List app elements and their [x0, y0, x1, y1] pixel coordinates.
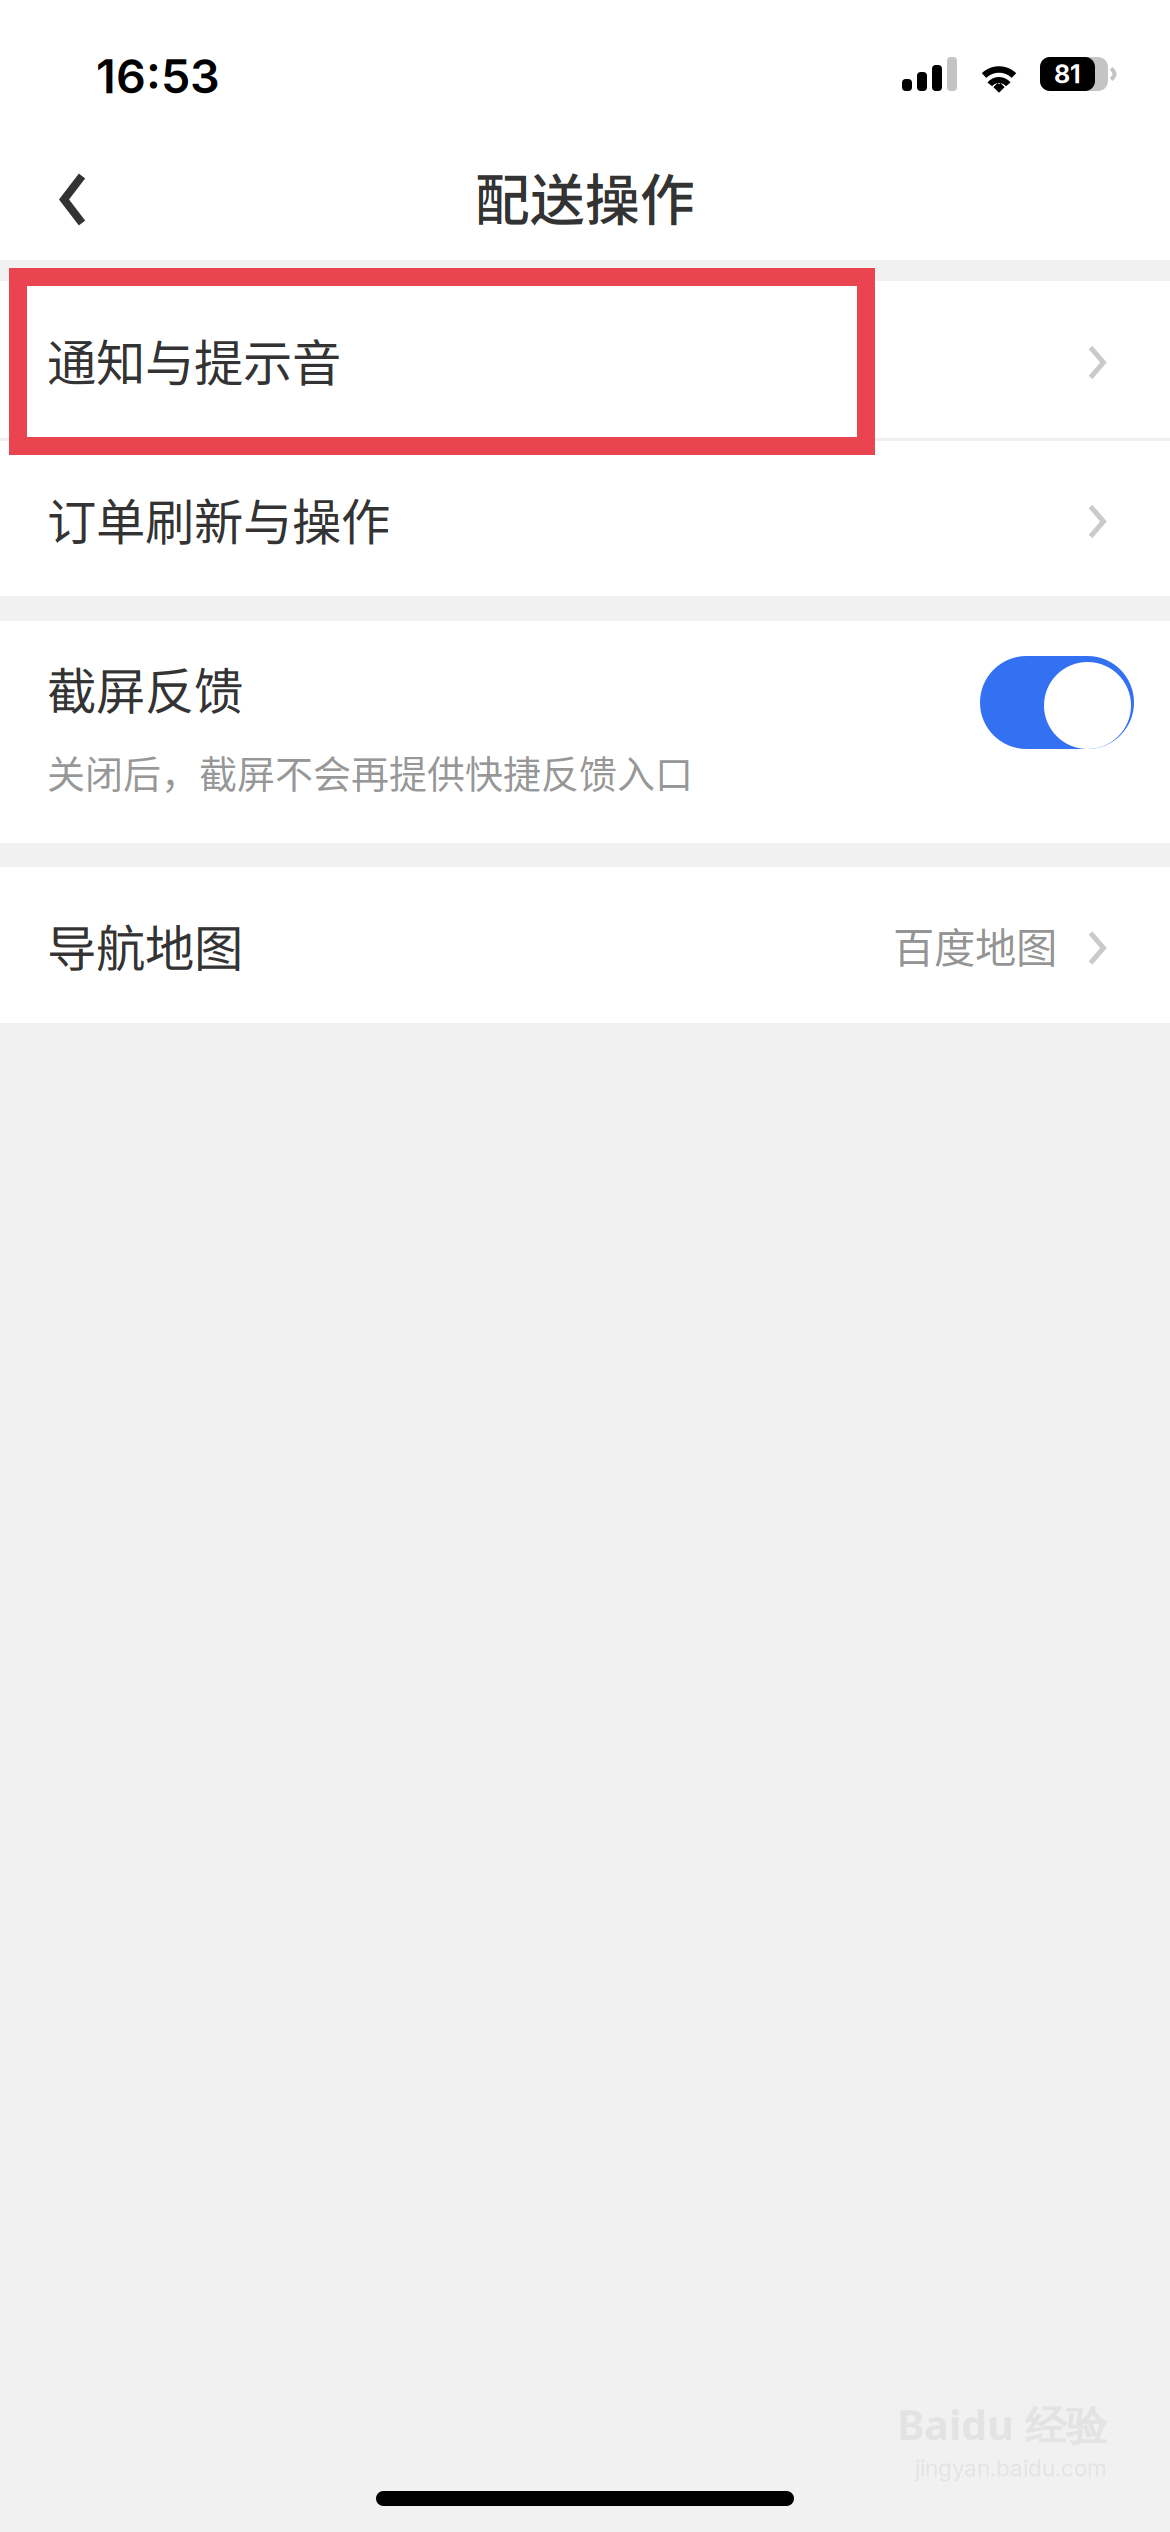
staticText: 关闭后，截屏不会再提供快捷反馈入口 [47, 744, 693, 799]
staticText: 订单刷新与操作 [47, 483, 390, 554]
button[interactable]: 返回 [0, 132, 140, 260]
button[interactable]: 通知与提示音 [0, 281, 1170, 438]
staticText: 导航地图 [47, 909, 243, 981]
staticText: 81 [1054, 59, 1081, 89]
staticText: 16:53 [96, 48, 220, 104]
button[interactable]: 导航地图 [0, 867, 1170, 1023]
staticText: Baidu 经验 [897, 2396, 1107, 2452]
button[interactable]: 1 [980, 656, 1134, 749]
staticText: 配送操作 [475, 156, 695, 236]
button[interactable]: 订单刷新与操作 [0, 441, 1170, 596]
staticText: 截屏反馈 [47, 652, 243, 723]
staticText: 百度地图 [893, 915, 1057, 975]
staticText: 通知与提示音 [47, 324, 341, 395]
staticText: jingyan.baidu.com [915, 2454, 1107, 2482]
